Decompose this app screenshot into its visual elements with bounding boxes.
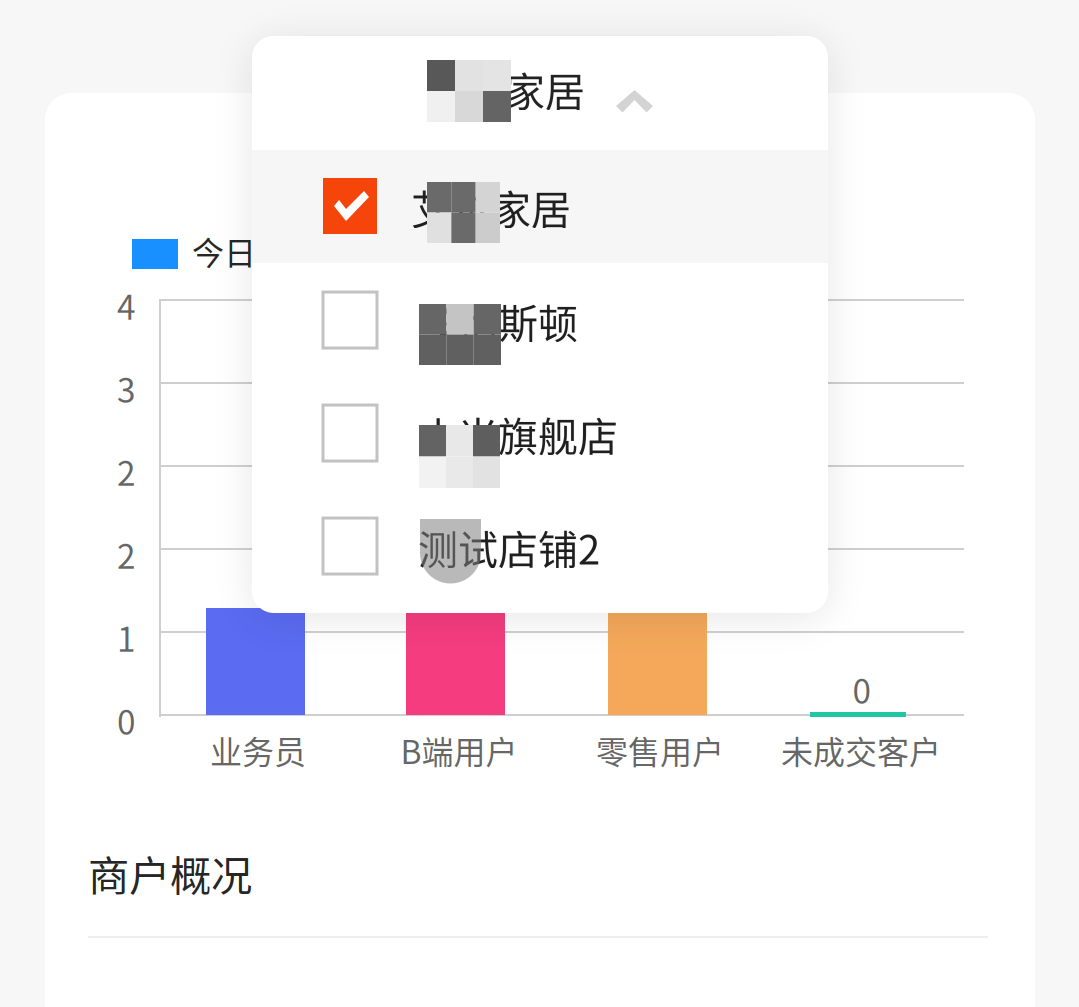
button[interactable]: 多伦斯顿 [252, 264, 828, 377]
button[interactable]: 小米旗舰店 [252, 377, 828, 490]
button[interactable]: 艾尔家居 [252, 150, 828, 263]
button[interactable]: 测试店铺2 [252, 490, 828, 603]
staticText: 1 [117, 613, 136, 661]
staticText: 商户概况 [88, 843, 252, 903]
staticText: 业务员 [210, 727, 306, 773]
staticText: 3 [117, 364, 136, 412]
staticText: 小米旗舰店 [418, 405, 618, 463]
staticText: 艾尔家居 [411, 178, 571, 236]
staticText: 0 [117, 696, 136, 744]
staticText: 2 [117, 530, 136, 578]
staticText: 0 [852, 665, 871, 713]
button[interactable]: 收起门店选择 [252, 36, 828, 150]
staticText: 今日 [192, 228, 256, 274]
staticText: B端用户 [400, 727, 517, 773]
staticText: 测试店铺2 [418, 518, 600, 576]
staticText: 2 [117, 447, 136, 495]
staticText: 多伦斯顿 [418, 292, 578, 350]
staticText: 未成交客户 [781, 727, 941, 773]
staticText: 长兴家居 [425, 60, 585, 118]
staticText: 4 [117, 281, 136, 329]
staticText: 零售用户 [596, 727, 724, 773]
